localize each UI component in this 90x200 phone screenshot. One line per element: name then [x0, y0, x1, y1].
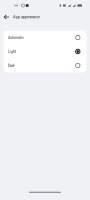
staticText: App appearance	[13, 15, 40, 19]
staticText: Dark	[8, 63, 15, 68]
button[interactable]: Automatic	[3, 30, 86, 44]
button[interactable]: Light	[3, 44, 86, 58]
staticText: Automatic	[8, 35, 24, 40]
staticText: Light	[8, 49, 16, 54]
button[interactable]: Dark	[3, 58, 86, 72]
button[interactable]: Back	[1, 11, 12, 22]
